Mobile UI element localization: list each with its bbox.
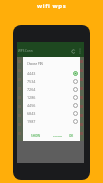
- staticText: 4443: [27, 71, 73, 76]
- button[interactable]: 6843: [23, 109, 80, 117]
- staticText: 6843: [27, 111, 73, 116]
- button[interactable]: 7264: [23, 85, 80, 93]
- staticText: Choose PIN: [27, 62, 43, 66]
- button[interactable]: 4443: [23, 69, 80, 77]
- staticText: WPS Conn: [18, 49, 33, 53]
- staticText: 1286: [27, 95, 73, 100]
- staticText: 4456: [27, 103, 73, 108]
- button[interactable]: 1286: [23, 93, 80, 101]
- button[interactable]: 4456: [23, 101, 80, 109]
- button[interactable]: CANCEL: [52, 133, 64, 138]
- button[interactable]: OK: [68, 133, 75, 139]
- staticText: 1987: [27, 119, 73, 124]
- button[interactable]: 7534: [23, 77, 80, 85]
- staticText: wifi wps: [37, 2, 67, 10]
- button[interactable]: SHOW: [30, 133, 42, 139]
- button[interactable]: More options: [76, 47, 83, 54]
- staticText: 7534: [27, 79, 73, 84]
- button[interactable]: Refresh: [69, 47, 77, 55]
- staticText: 7264: [27, 87, 73, 92]
- button[interactable]: 1987: [23, 117, 80, 125]
